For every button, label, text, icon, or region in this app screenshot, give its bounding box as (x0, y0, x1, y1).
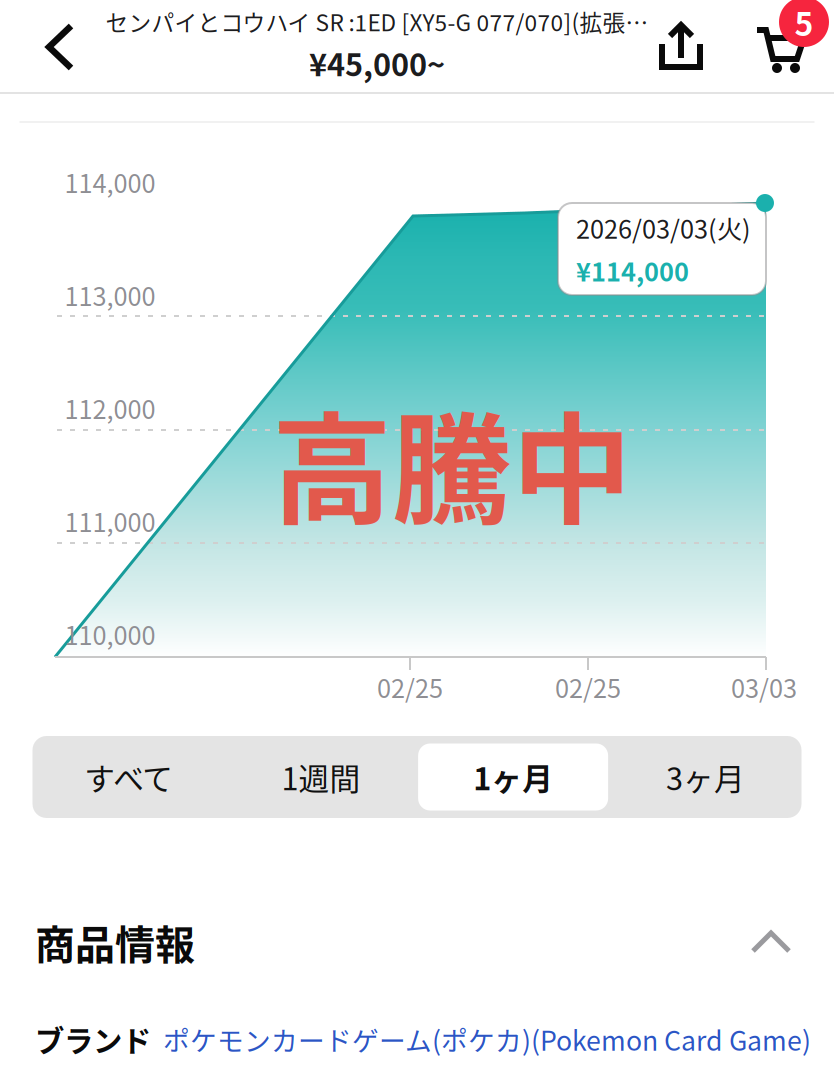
button[interactable]: Cart (733, 2, 829, 94)
button[interactable]: 1ヶ月 (417, 736, 609, 818)
staticText: 商品情報 (35, 913, 195, 971)
staticText: 02/25 (555, 669, 621, 705)
button[interactable]: 1週間 (225, 736, 417, 818)
button[interactable]: 3ヶ月 (609, 736, 801, 818)
staticText: 3ヶ月 (666, 755, 745, 799)
button[interactable]: Share (643, 2, 719, 92)
staticText: ¥114,000 (576, 252, 689, 289)
staticText: 114,000 (64, 164, 155, 200)
button[interactable]: すべて (32, 736, 225, 818)
staticText: 1週間 (281, 755, 360, 799)
staticText: ブランド (35, 1018, 151, 1060)
staticText: 03/03 (731, 669, 797, 705)
staticText: 113,000 (64, 277, 155, 313)
staticText: 02/25 (377, 669, 443, 705)
staticText: ポケモンカードゲーム(ポケカ)(Pokemon Card Game) (163, 1020, 811, 1058)
staticText: 高騰中 (272, 375, 632, 549)
staticText: 5 (794, 0, 813, 45)
button[interactable]: 商品情報 (35, 911, 801, 973)
staticText: ¥45,000~ (309, 41, 445, 85)
staticText: 2026/03/03(火) (576, 209, 751, 246)
staticText: 112,000 (64, 390, 155, 426)
staticText: すべて (84, 755, 173, 799)
button[interactable]: Back (10, 1, 104, 93)
staticText: センパイとコウハイ SR :1ED [XY5-G 077/070](拡張… (105, 5, 648, 38)
staticText: 111,000 (64, 503, 155, 539)
staticText: 1ヶ月 (473, 755, 553, 799)
staticText: 110,000 (64, 616, 155, 652)
